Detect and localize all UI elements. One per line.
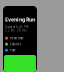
staticText: 5.2 km - 28 min — [5, 29, 27, 32]
staticText: Calories — [10, 42, 21, 46]
staticText: Heart Rate — [10, 36, 24, 40]
staticText: Evening Run — [5, 16, 35, 23]
staticText: Today at 6:45 PM — [5, 25, 28, 29]
staticText: Pace — [10, 48, 16, 52]
